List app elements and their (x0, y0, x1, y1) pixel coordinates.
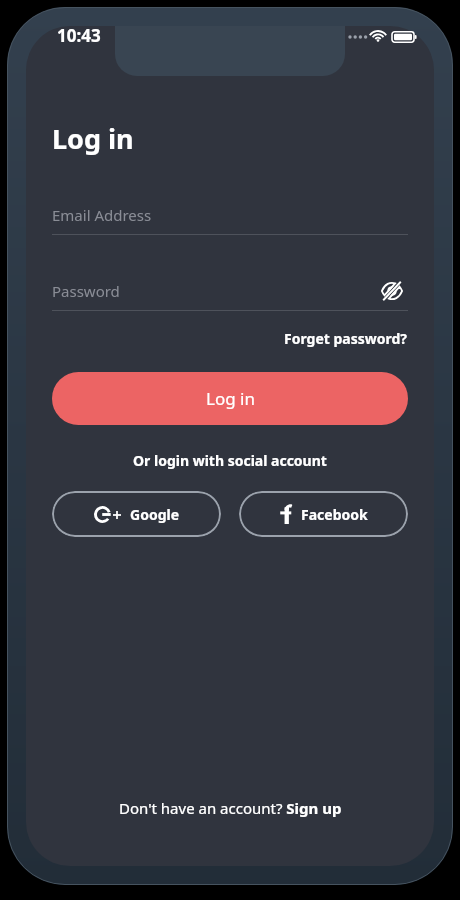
staticText: Password (52, 281, 120, 301)
button[interactable]: Facebook (239, 491, 408, 537)
button[interactable]: Log in (52, 372, 408, 425)
staticText: 10:43 (57, 24, 101, 47)
staticText: Or login with social account (133, 451, 327, 470)
button[interactable]: Email Address (52, 196, 408, 234)
button[interactable]: Forget password? (284, 327, 408, 350)
staticText: Facebook (301, 505, 368, 524)
button[interactable]: Show password (376, 275, 408, 307)
staticText: Don't have an account? Sign up (119, 798, 342, 818)
button[interactable]: Don't have an account? Sign up (111, 794, 350, 822)
staticText: Email Address (52, 205, 152, 225)
button[interactable]: Google (52, 491, 221, 537)
staticText: Google (130, 505, 180, 524)
staticText: Log in (52, 120, 134, 157)
staticText: Log in (206, 387, 255, 410)
staticText: Forget password? (284, 329, 408, 348)
button[interactable]: Password (52, 272, 408, 310)
